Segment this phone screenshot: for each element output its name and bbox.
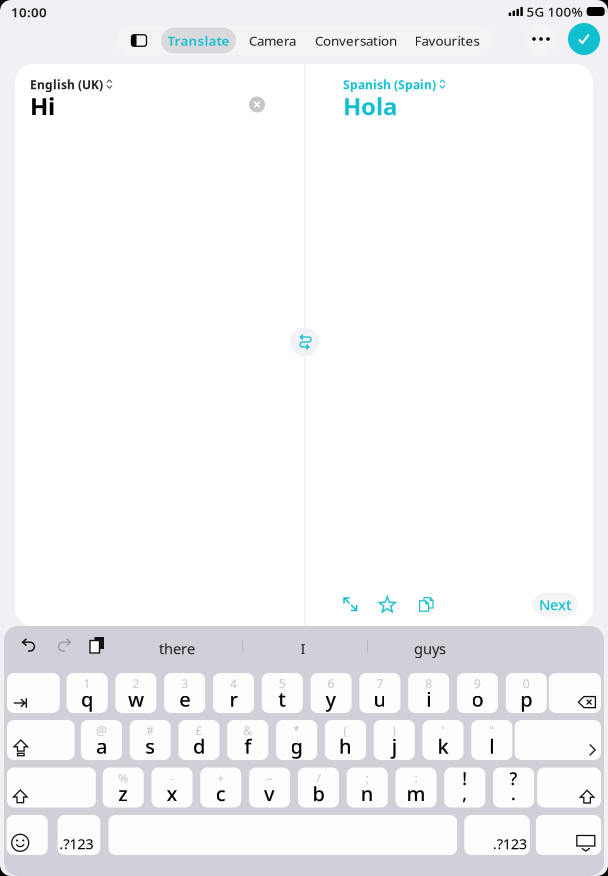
button[interactable]: " xyxy=(471,720,512,760)
staticText: I xyxy=(300,639,305,658)
button[interactable]: I xyxy=(251,636,355,660)
staticText: ) xyxy=(392,722,396,738)
staticText: 100% xyxy=(547,3,582,20)
staticText: 3 xyxy=(181,675,188,691)
button[interactable]: Done xyxy=(568,23,600,55)
button[interactable]: £ xyxy=(178,720,219,760)
staticText: w xyxy=(128,686,144,712)
button[interactable]: 0 xyxy=(506,673,547,713)
button[interactable]: Translate xyxy=(161,27,236,53)
button[interactable]: - xyxy=(151,767,192,807)
button[interactable]: Conversation xyxy=(312,26,400,55)
staticText: y xyxy=(326,686,337,712)
button[interactable]: % xyxy=(103,767,144,807)
button[interactable]: 1 xyxy=(67,673,108,713)
button[interactable]: .?123 xyxy=(0,0,608,876)
button[interactable]: guys xyxy=(378,636,482,660)
staticText: , xyxy=(462,782,467,805)
button[interactable]: & xyxy=(227,720,268,760)
button[interactable]: / xyxy=(298,767,339,807)
button[interactable]: 9 xyxy=(457,673,498,713)
staticText: % xyxy=(118,770,128,786)
staticText: c xyxy=(216,780,226,807)
staticText: u xyxy=(373,686,386,712)
button[interactable]: Redo xyxy=(56,637,72,653)
button[interactable]: 8 xyxy=(408,673,449,713)
button[interactable]: Expand xyxy=(336,590,364,618)
button[interactable]: ! xyxy=(444,767,485,807)
button[interactable]: Delete xyxy=(0,0,608,876)
staticText: + xyxy=(217,770,224,786)
button[interactable]: Next xyxy=(533,592,578,616)
button[interactable]: * xyxy=(276,720,317,760)
button[interactable]: 2 xyxy=(115,673,156,713)
button[interactable]: = xyxy=(249,767,290,807)
staticText: i xyxy=(426,686,431,712)
staticText: g xyxy=(291,733,303,759)
staticText: q xyxy=(81,686,93,712)
button[interactable]: Camera xyxy=(243,26,302,55)
button[interactable]: ' xyxy=(422,720,463,760)
button[interactable]: Space xyxy=(0,0,608,876)
staticText: b xyxy=(312,780,324,807)
staticText: ( xyxy=(343,722,347,738)
staticText: ! xyxy=(462,767,467,790)
staticText: / xyxy=(316,770,320,786)
staticText: 10:00 xyxy=(11,3,47,21)
button[interactable]: Sidebar xyxy=(128,27,150,54)
button[interactable]: Return xyxy=(0,0,608,876)
staticText: 0 xyxy=(523,675,530,691)
staticText: . xyxy=(511,782,516,805)
button[interactable]: 4 xyxy=(213,673,254,713)
staticText: there xyxy=(159,639,195,658)
button[interactable]: Paste xyxy=(89,636,106,654)
button[interactable]: : xyxy=(395,767,436,807)
button[interactable]: ; xyxy=(347,767,388,807)
staticText: 5 xyxy=(279,675,286,691)
button[interactable]: 7 xyxy=(359,673,400,713)
button[interactable]: Favourites xyxy=(410,26,484,55)
staticText: j xyxy=(392,733,397,759)
button[interactable]: @ xyxy=(81,720,122,760)
button[interactable]: Hide keyboard xyxy=(0,0,608,876)
button[interactable]: Copy xyxy=(412,590,440,618)
button[interactable]: 3 xyxy=(164,673,205,713)
staticText: e xyxy=(179,686,190,712)
staticText: 6 xyxy=(328,675,335,691)
button[interactable]: 6 xyxy=(311,673,352,713)
button[interactable]: Undo xyxy=(21,637,37,653)
button[interactable]: Swap languages xyxy=(290,327,319,356)
button[interactable]: + xyxy=(200,767,241,807)
staticText: p xyxy=(520,686,532,712)
staticText: Hola xyxy=(343,90,397,122)
staticText: 1 xyxy=(84,675,91,691)
button[interactable]: # xyxy=(130,720,171,760)
staticText: h xyxy=(339,733,352,759)
button[interactable]: ) xyxy=(374,720,415,760)
button[interactable]: Clear xyxy=(249,96,265,112)
staticText: Next xyxy=(539,595,572,614)
staticText: l xyxy=(489,733,494,759)
button[interactable]: Emoji xyxy=(0,0,608,876)
staticText: .?123 xyxy=(59,834,93,853)
button[interactable]: Favourite xyxy=(373,591,401,619)
staticText: # xyxy=(146,722,154,738)
staticText: ? xyxy=(510,767,518,790)
button[interactable]: 5 xyxy=(262,673,303,713)
button[interactable]: ( xyxy=(325,720,366,760)
staticText: @ xyxy=(96,722,107,738)
staticText: : xyxy=(414,770,417,786)
button[interactable]: Caps lock xyxy=(0,0,608,876)
button[interactable]: ? xyxy=(493,767,534,807)
staticText: = xyxy=(266,770,273,786)
button[interactable]: Tab xyxy=(0,0,608,876)
button[interactable]: .?123 xyxy=(0,0,608,876)
staticText: " xyxy=(489,722,494,738)
staticText: Translate xyxy=(167,32,229,49)
staticText: s xyxy=(145,733,155,759)
button[interactable]: there xyxy=(125,636,229,660)
staticText: 5G xyxy=(526,3,544,20)
button[interactable]: Shift xyxy=(0,0,608,876)
button[interactable]: More xyxy=(525,23,557,55)
button[interactable]: Shift xyxy=(0,0,608,876)
